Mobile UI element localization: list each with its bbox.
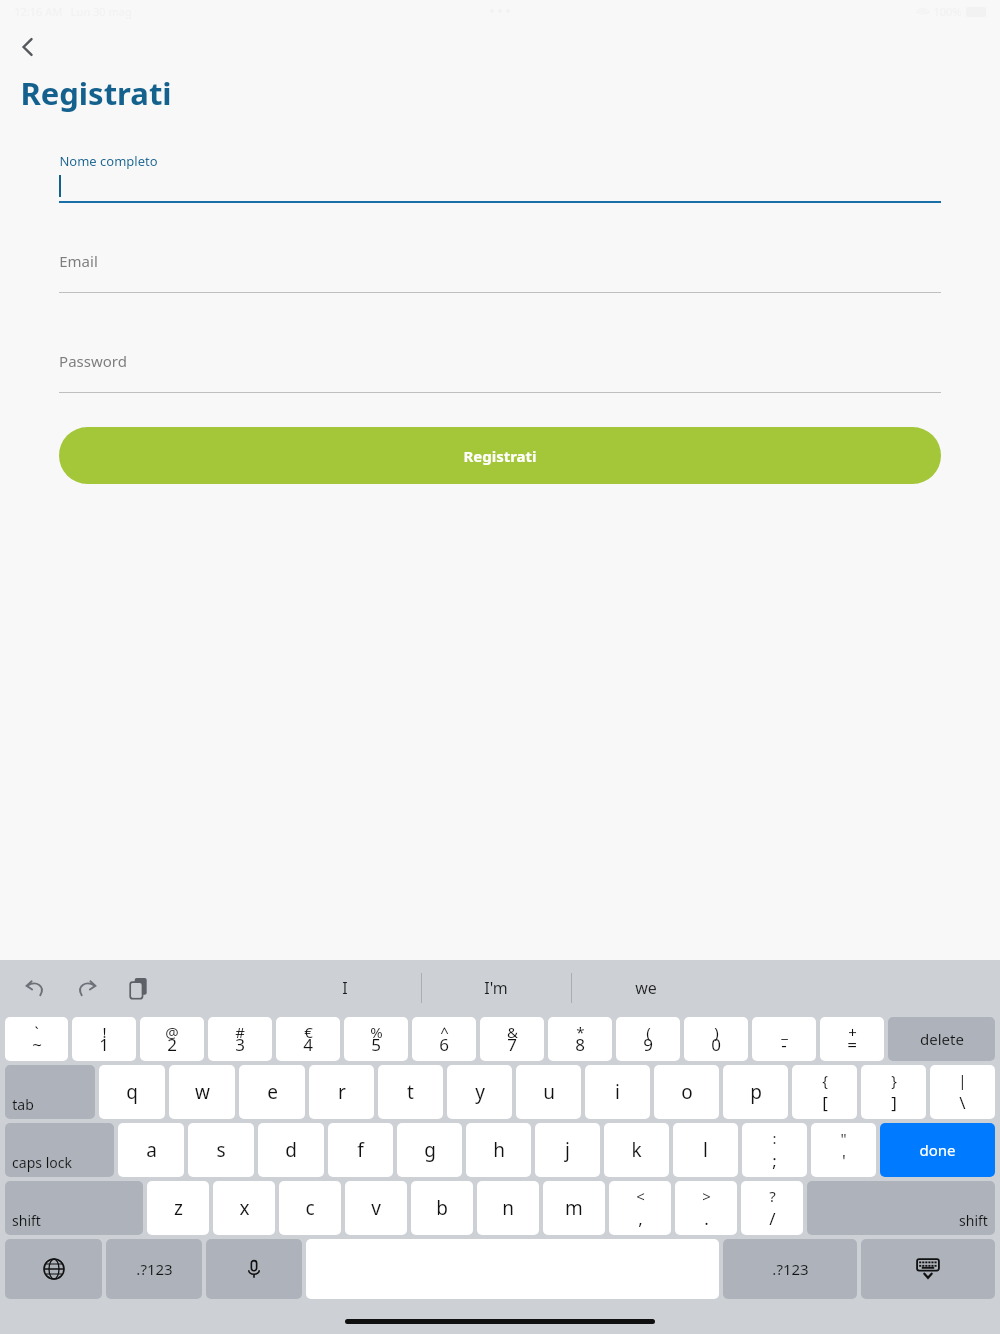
staticText: @ bbox=[165, 1022, 179, 1042]
staticText: Email bbox=[59, 251, 98, 271]
button[interactable]: done bbox=[880, 1123, 995, 1177]
button[interactable]: j bbox=[535, 1123, 600, 1177]
staticText: { bbox=[822, 1070, 828, 1090]
staticText: Registrati bbox=[20, 72, 172, 114]
staticText: o bbox=[681, 1079, 693, 1105]
button[interactable]: caps lock bbox=[5, 1123, 114, 1177]
staticText: 1 bbox=[99, 1033, 109, 1056]
button[interactable]: z bbox=[147, 1181, 209, 1235]
staticText: u bbox=[543, 1079, 555, 1105]
button[interactable]: Hide keyboard bbox=[861, 1239, 995, 1299]
button[interactable]: y bbox=[447, 1065, 512, 1119]
button[interactable]: f bbox=[328, 1123, 393, 1177]
button[interactable]: n bbox=[477, 1181, 539, 1235]
button[interactable]: Language bbox=[5, 1239, 102, 1299]
button[interactable]: # bbox=[208, 1017, 272, 1061]
staticText: = bbox=[847, 1033, 857, 1056]
staticText: " bbox=[840, 1128, 847, 1148]
button[interactable]: Password bbox=[59, 351, 941, 393]
button[interactable]: | bbox=[930, 1065, 995, 1119]
staticText: .?123 bbox=[772, 1259, 809, 1279]
staticText: % bbox=[370, 1022, 383, 1042]
button[interactable]: shift bbox=[5, 1181, 143, 1235]
button[interactable]: Back bbox=[6, 25, 50, 69]
button[interactable]: .?123 bbox=[106, 1239, 202, 1299]
button[interactable]: i bbox=[585, 1065, 650, 1119]
button[interactable]: p bbox=[723, 1065, 788, 1119]
staticText: ] bbox=[891, 1091, 897, 1114]
button[interactable]: v bbox=[345, 1181, 407, 1235]
button[interactable]: m bbox=[543, 1181, 605, 1235]
staticText: _ bbox=[781, 1022, 788, 1042]
button[interactable]: w bbox=[169, 1065, 235, 1119]
button[interactable]: t bbox=[378, 1065, 443, 1119]
button[interactable]: _ bbox=[752, 1017, 816, 1061]
button[interactable]: a bbox=[118, 1123, 184, 1177]
staticText: g bbox=[424, 1137, 436, 1163]
button[interactable]: we bbox=[571, 960, 721, 1015]
button[interactable]: " bbox=[811, 1123, 876, 1177]
button[interactable]: + bbox=[820, 1017, 884, 1061]
button[interactable]: { bbox=[792, 1065, 857, 1119]
button[interactable]: ? bbox=[741, 1181, 803, 1235]
button[interactable]: k bbox=[604, 1123, 669, 1177]
button[interactable]: * bbox=[548, 1017, 612, 1061]
button[interactable]: ( bbox=[616, 1017, 680, 1061]
button[interactable]: d bbox=[258, 1123, 324, 1177]
button[interactable]: Redo bbox=[70, 971, 104, 1005]
staticText: 9 bbox=[643, 1033, 653, 1056]
staticText: Nome completo bbox=[59, 152, 158, 170]
button[interactable]: l bbox=[673, 1123, 738, 1177]
button[interactable]: : bbox=[742, 1123, 807, 1177]
button[interactable]: g bbox=[397, 1123, 462, 1177]
button[interactable]: } bbox=[861, 1065, 926, 1119]
button[interactable]: delete bbox=[888, 1017, 995, 1061]
staticText: } bbox=[891, 1070, 897, 1090]
staticText: ! bbox=[102, 1022, 107, 1042]
staticText: f bbox=[357, 1137, 364, 1163]
staticText: 2 bbox=[167, 1033, 177, 1056]
staticText: h bbox=[493, 1137, 505, 1163]
button[interactable]: < bbox=[609, 1181, 671, 1235]
button[interactable]: x bbox=[213, 1181, 275, 1235]
button[interactable]: @ bbox=[140, 1017, 204, 1061]
staticText: : bbox=[772, 1128, 777, 1148]
button[interactable]: b bbox=[411, 1181, 473, 1235]
staticText: d bbox=[285, 1137, 297, 1163]
button[interactable]: I bbox=[268, 960, 421, 1015]
button[interactable]: r bbox=[309, 1065, 374, 1119]
button[interactable]: Dictation bbox=[206, 1239, 302, 1299]
staticText: 4 bbox=[303, 1033, 313, 1056]
button[interactable]: Paste bbox=[122, 971, 156, 1005]
button[interactable]: q bbox=[99, 1065, 165, 1119]
staticText: done bbox=[919, 1140, 956, 1160]
button[interactable]: ! bbox=[72, 1017, 136, 1061]
button[interactable]: Registrati bbox=[59, 427, 941, 484]
button[interactable]: e bbox=[239, 1065, 305, 1119]
staticText: p bbox=[750, 1079, 762, 1105]
button[interactable]: % bbox=[344, 1017, 408, 1061]
button[interactable]: shift bbox=[807, 1181, 995, 1235]
button[interactable]: .?123 bbox=[723, 1239, 857, 1299]
button[interactable]: h bbox=[466, 1123, 531, 1177]
button[interactable]: u bbox=[516, 1065, 581, 1119]
button[interactable]: > bbox=[675, 1181, 737, 1235]
button[interactable]: tab bbox=[5, 1065, 95, 1119]
staticText: 3 bbox=[235, 1033, 245, 1056]
button[interactable]: ` bbox=[5, 1017, 68, 1061]
button[interactable]: I'm bbox=[421, 960, 571, 1015]
button[interactable]: Undo bbox=[18, 971, 52, 1005]
button[interactable]: Nome completo bbox=[59, 152, 941, 203]
button[interactable]: Email bbox=[59, 251, 941, 293]
button[interactable]: s bbox=[188, 1123, 254, 1177]
button[interactable]: ^ bbox=[412, 1017, 476, 1061]
button[interactable]: & bbox=[480, 1017, 544, 1061]
staticText: ^ bbox=[440, 1022, 449, 1042]
button[interactable]: ) bbox=[684, 1017, 748, 1061]
button[interactable]: € bbox=[276, 1017, 340, 1061]
staticText: € bbox=[304, 1022, 313, 1042]
button[interactable]: o bbox=[654, 1065, 719, 1119]
button[interactable]: c bbox=[279, 1181, 341, 1235]
